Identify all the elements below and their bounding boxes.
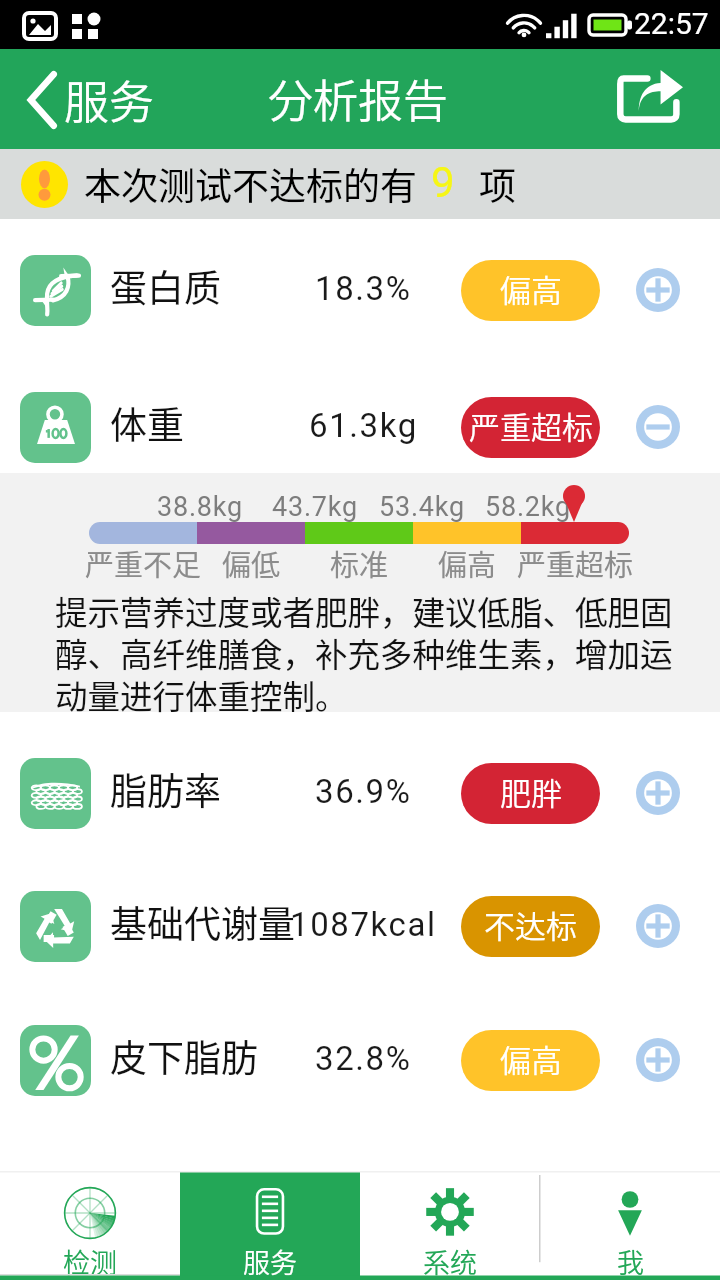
staticText: 我	[617, 1242, 644, 1280]
staticText: 皮下脂肪	[110, 1029, 258, 1083]
button[interactable]: 服务	[180, 1171, 360, 1280]
button[interactable]: 检测	[0, 1171, 180, 1280]
staticText: 严重超标	[469, 403, 593, 448]
button[interactable]: Collapse	[630, 399, 686, 455]
button[interactable]: 体重	[0, 372, 720, 482]
button[interactable]: 偏高	[461, 260, 600, 321]
staticText: 43.7kg	[272, 491, 359, 523]
staticText: 38.8kg	[157, 491, 244, 523]
staticText: 分析报告	[268, 66, 449, 131]
button[interactable]: 肥胖	[461, 763, 600, 824]
staticText: 严重超标	[517, 542, 634, 584]
staticText: 肥胖	[500, 769, 562, 814]
staticText: 服务	[64, 67, 155, 132]
staticText: 蛋白质	[110, 259, 221, 313]
staticText: 检测	[63, 1242, 117, 1280]
staticText: 58.2kg	[485, 491, 572, 523]
button[interactable]: Expand	[630, 262, 686, 318]
staticText: 系统	[423, 1242, 477, 1280]
staticText: 严重不足	[85, 542, 202, 584]
button[interactable]: Expand	[630, 898, 686, 954]
staticText: 偏高	[438, 542, 497, 584]
staticText: 项	[479, 157, 516, 211]
staticText: 标准	[330, 542, 389, 584]
button[interactable]: 严重超标	[461, 397, 600, 458]
staticText: 偏高	[500, 1036, 562, 1081]
staticText: 脂肪率	[110, 762, 221, 816]
button[interactable]: 基础代谢量	[0, 871, 720, 981]
staticText: 本次测试不达标的有	[84, 157, 417, 211]
button[interactable]: Expand	[630, 765, 686, 821]
button[interactable]: Share	[617, 71, 683, 125]
staticText: 体重	[110, 396, 184, 450]
staticText: 36.9%	[315, 772, 412, 811]
staticText: 61.3kg	[309, 406, 418, 445]
button[interactable]: 脂肪率	[0, 738, 720, 848]
staticText: 服务	[243, 1242, 297, 1280]
button[interactable]: Expand	[630, 1032, 686, 1088]
staticText: 53.4kg	[379, 491, 466, 523]
staticText: 偏高	[500, 266, 562, 311]
staticText: 基础代谢量	[110, 895, 295, 949]
button[interactable]: 蛋白质	[0, 235, 720, 345]
staticText: 不达标	[484, 902, 577, 947]
staticText: 1087kcal	[290, 905, 437, 944]
staticText: 18.3%	[315, 269, 412, 308]
staticText: 提示营养过度或者肥胖，建议低脂、低胆固醇、高纤维膳食，补充多种维生素，增加运动量…	[55, 587, 687, 718]
staticText: 22:57	[634, 6, 709, 41]
button[interactable]: 服务	[0, 67, 165, 132]
button[interactable]: 我	[540, 1171, 720, 1280]
button[interactable]: 皮下脂肪	[0, 1005, 720, 1115]
staticText: 偏低	[222, 542, 281, 584]
staticText: 32.8%	[315, 1039, 412, 1078]
button[interactable]: 系统	[360, 1171, 540, 1280]
button[interactable]: 不达标	[461, 896, 600, 957]
button[interactable]: 偏高	[461, 1030, 600, 1091]
staticText: 9	[431, 158, 455, 207]
